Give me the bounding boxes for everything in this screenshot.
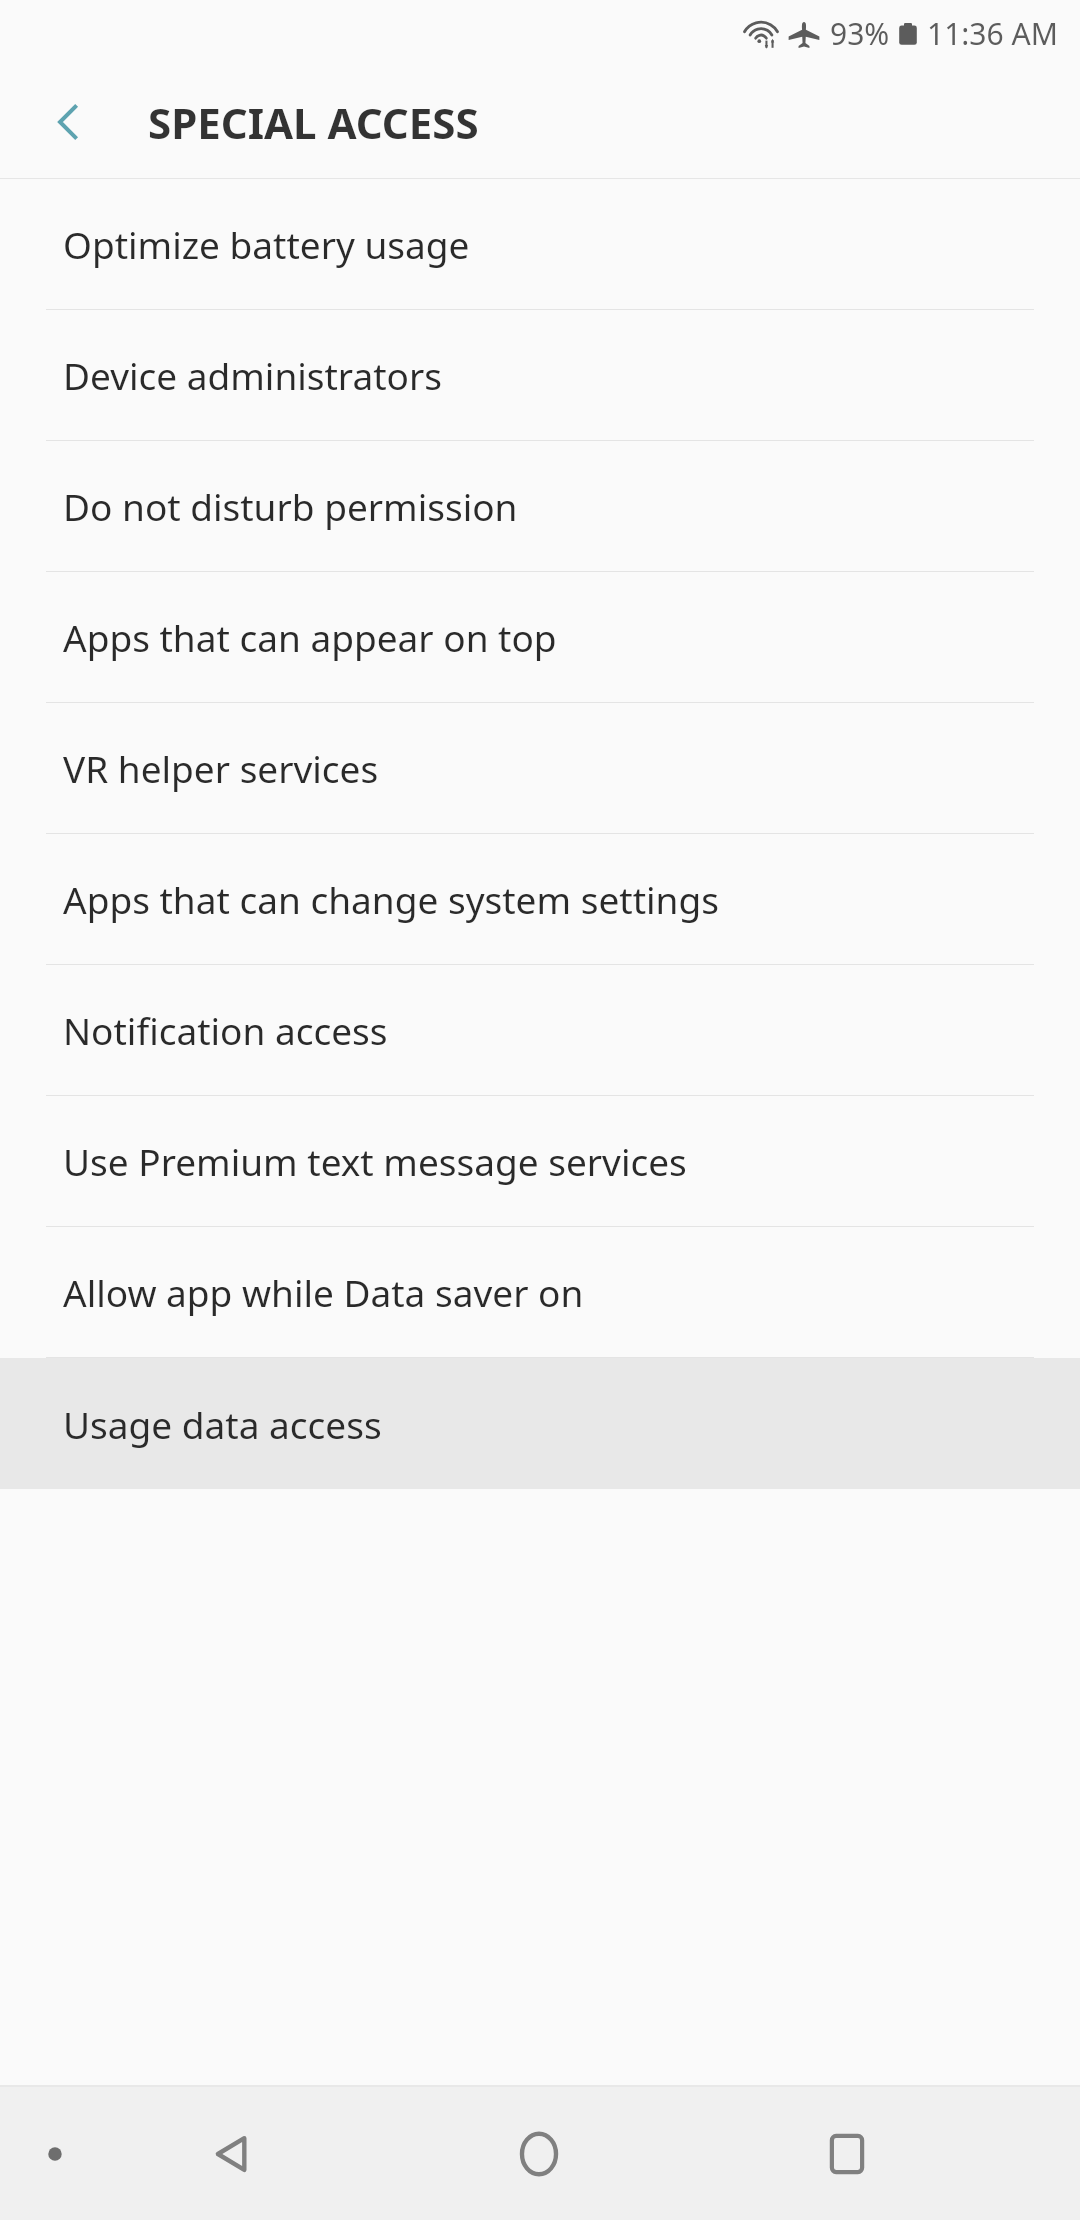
staticText: Do not disturb permission — [63, 481, 518, 531]
button[interactable]: Apps that can change system settings — [0, 834, 1080, 964]
button[interactable]: Home — [464, 2087, 614, 2220]
button[interactable]: Usage data access — [0, 1358, 1080, 1489]
staticText: Usage data access — [63, 1399, 382, 1449]
staticText: Device administrators — [63, 350, 442, 400]
button[interactable]: Use Premium text message services — [0, 1096, 1080, 1226]
staticText: Apps that can change system settings — [63, 874, 719, 924]
button[interactable]: Apps that can appear on top — [0, 572, 1080, 702]
staticText: SPECIAL ACCESS — [148, 94, 479, 151]
staticText: VR helper services — [63, 743, 379, 793]
button[interactable]: Menu indicator — [20, 2119, 90, 2189]
button[interactable]: Do not disturb permission — [0, 441, 1080, 571]
staticText: Notification access — [63, 1005, 388, 1055]
button[interactable]: Optimize battery usage — [0, 179, 1080, 309]
button[interactable]: Back — [157, 2087, 307, 2220]
button[interactable]: Allow app while Data saver on — [0, 1227, 1080, 1357]
staticText: Use Premium text message services — [63, 1136, 687, 1186]
button[interactable]: VR helper services — [0, 703, 1080, 833]
staticText: 11:36 AM — [927, 13, 1058, 54]
staticText: Optimize battery usage — [63, 219, 470, 269]
staticText: Allow app while Data saver on — [63, 1267, 584, 1317]
staticText: 93% — [830, 13, 890, 54]
staticText: Apps that can appear on top — [63, 612, 557, 662]
button[interactable]: Device administrators — [0, 310, 1080, 440]
button[interactable]: Notification access — [0, 965, 1080, 1095]
button[interactable]: Back — [18, 72, 118, 172]
button[interactable]: Recent apps — [772, 2087, 922, 2220]
